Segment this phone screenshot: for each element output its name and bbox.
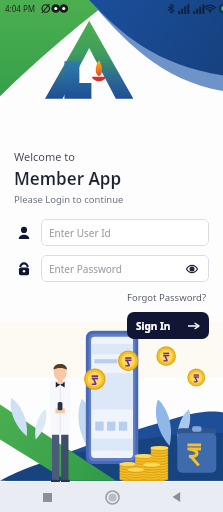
button[interactable]: Home: [95, 482, 129, 512]
staticText: Please Login to continue: [14, 193, 124, 206]
staticText: Sign In: [136, 319, 171, 333]
button[interactable]: Enter User Id: [41, 219, 209, 246]
button[interactable]: Enter Password: [41, 255, 209, 282]
staticText: Welcome to: [14, 149, 75, 164]
button[interactable]: Forgot Password?: [125, 290, 209, 305]
button[interactable]: Back: [159, 482, 193, 512]
button[interactable]: Sign In: [127, 312, 209, 339]
button[interactable]: Recent apps: [30, 482, 64, 512]
staticText: 4:04 PM: [5, 3, 36, 14]
staticText: Enter Password: [49, 262, 122, 276]
staticText: Enter User Id: [49, 226, 111, 240]
staticText: Forgot Password?: [127, 291, 207, 304]
staticText: Member App: [14, 167, 122, 190]
button[interactable]: Show password: [183, 260, 201, 278]
